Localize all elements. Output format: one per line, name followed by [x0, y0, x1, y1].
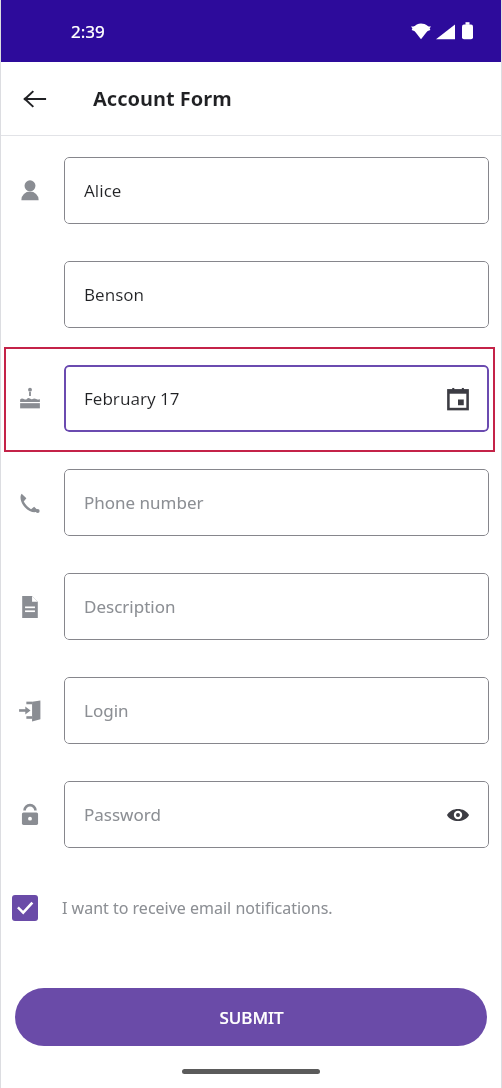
staticText: Account Form: [93, 85, 232, 112]
button[interactable]: Description: [64, 573, 489, 640]
staticText: Description: [84, 595, 176, 618]
button[interactable]: Login: [64, 677, 489, 744]
button[interactable]: Pick date: [441, 382, 475, 416]
other: Password: [14, 799, 46, 831]
staticText: February 17: [84, 387, 180, 410]
staticText: Benson: [84, 283, 145, 306]
button[interactable]: Back: [11, 75, 59, 123]
staticText: Phone number: [84, 491, 204, 514]
button[interactable]: SUBMIT: [15, 988, 487, 1046]
button[interactable]: Phone number: [64, 469, 489, 536]
other: Person: [14, 175, 46, 207]
other: Phone: [14, 487, 46, 519]
button[interactable]: I want to receive email notifications.: [12, 886, 333, 930]
button[interactable]: Benson: [64, 261, 489, 328]
staticText: Login: [84, 699, 129, 722]
staticText: I want to receive email notifications.: [62, 897, 333, 919]
staticText: 2:39: [71, 20, 105, 43]
staticText: Password: [84, 803, 161, 826]
staticText: Alice: [84, 179, 122, 202]
other: Login: [14, 695, 46, 727]
staticText: SUBMIT: [219, 1006, 284, 1029]
other: Birthday: [14, 383, 46, 415]
button[interactable]: Alice: [64, 157, 489, 224]
button[interactable]: February 17: [64, 365, 489, 432]
other: Description: [14, 591, 46, 623]
button[interactable]: Password: [64, 781, 489, 848]
button[interactable]: Show password: [441, 798, 475, 832]
